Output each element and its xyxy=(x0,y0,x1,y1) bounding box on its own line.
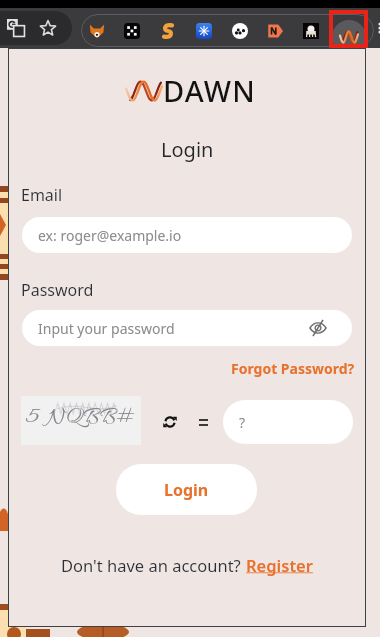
staticText: ? xyxy=(239,413,246,432)
button[interactable]: DAWN extension xyxy=(332,20,366,54)
button[interactable]: Translate xyxy=(7,19,25,37)
button[interactable]: Bookmark this page xyxy=(39,19,57,37)
staticText: Register xyxy=(246,554,313,576)
button[interactable]: QR code xyxy=(124,23,140,39)
staticText: 5 NQBB# xyxy=(26,403,137,433)
button[interactable]: Register xyxy=(246,554,313,576)
button[interactable]: ? xyxy=(223,400,353,444)
staticText: Input your password xyxy=(38,319,175,338)
button[interactable]: Input your password xyxy=(22,310,352,346)
staticText: Don't have an account? xyxy=(61,554,246,576)
staticText: DAWN xyxy=(163,71,257,110)
button[interactable]: Show password xyxy=(309,319,327,337)
button[interactable]: Snake xyxy=(160,23,176,39)
staticText: Forgot Password? xyxy=(231,359,355,378)
button[interactable]: MetaMask xyxy=(89,23,105,39)
button[interactable]: Forgot Password? xyxy=(231,359,355,378)
staticText: Email xyxy=(21,184,63,206)
button[interactable]: More options xyxy=(372,20,380,36)
button[interactable]: Refresh captcha xyxy=(163,415,177,429)
button[interactable]: Octopus xyxy=(303,23,319,39)
staticText: Login xyxy=(164,479,209,501)
staticText: Password xyxy=(21,279,94,301)
staticText: Login xyxy=(161,136,214,163)
button[interactable]: N extension xyxy=(267,23,283,39)
button[interactable]: Blue extension xyxy=(196,23,212,39)
button[interactable]: Dots xyxy=(232,23,248,39)
button[interactable]: ex: roger@example.io xyxy=(22,217,352,253)
button[interactable]: Login xyxy=(116,464,257,515)
staticText: ex: roger@example.io xyxy=(38,226,182,245)
